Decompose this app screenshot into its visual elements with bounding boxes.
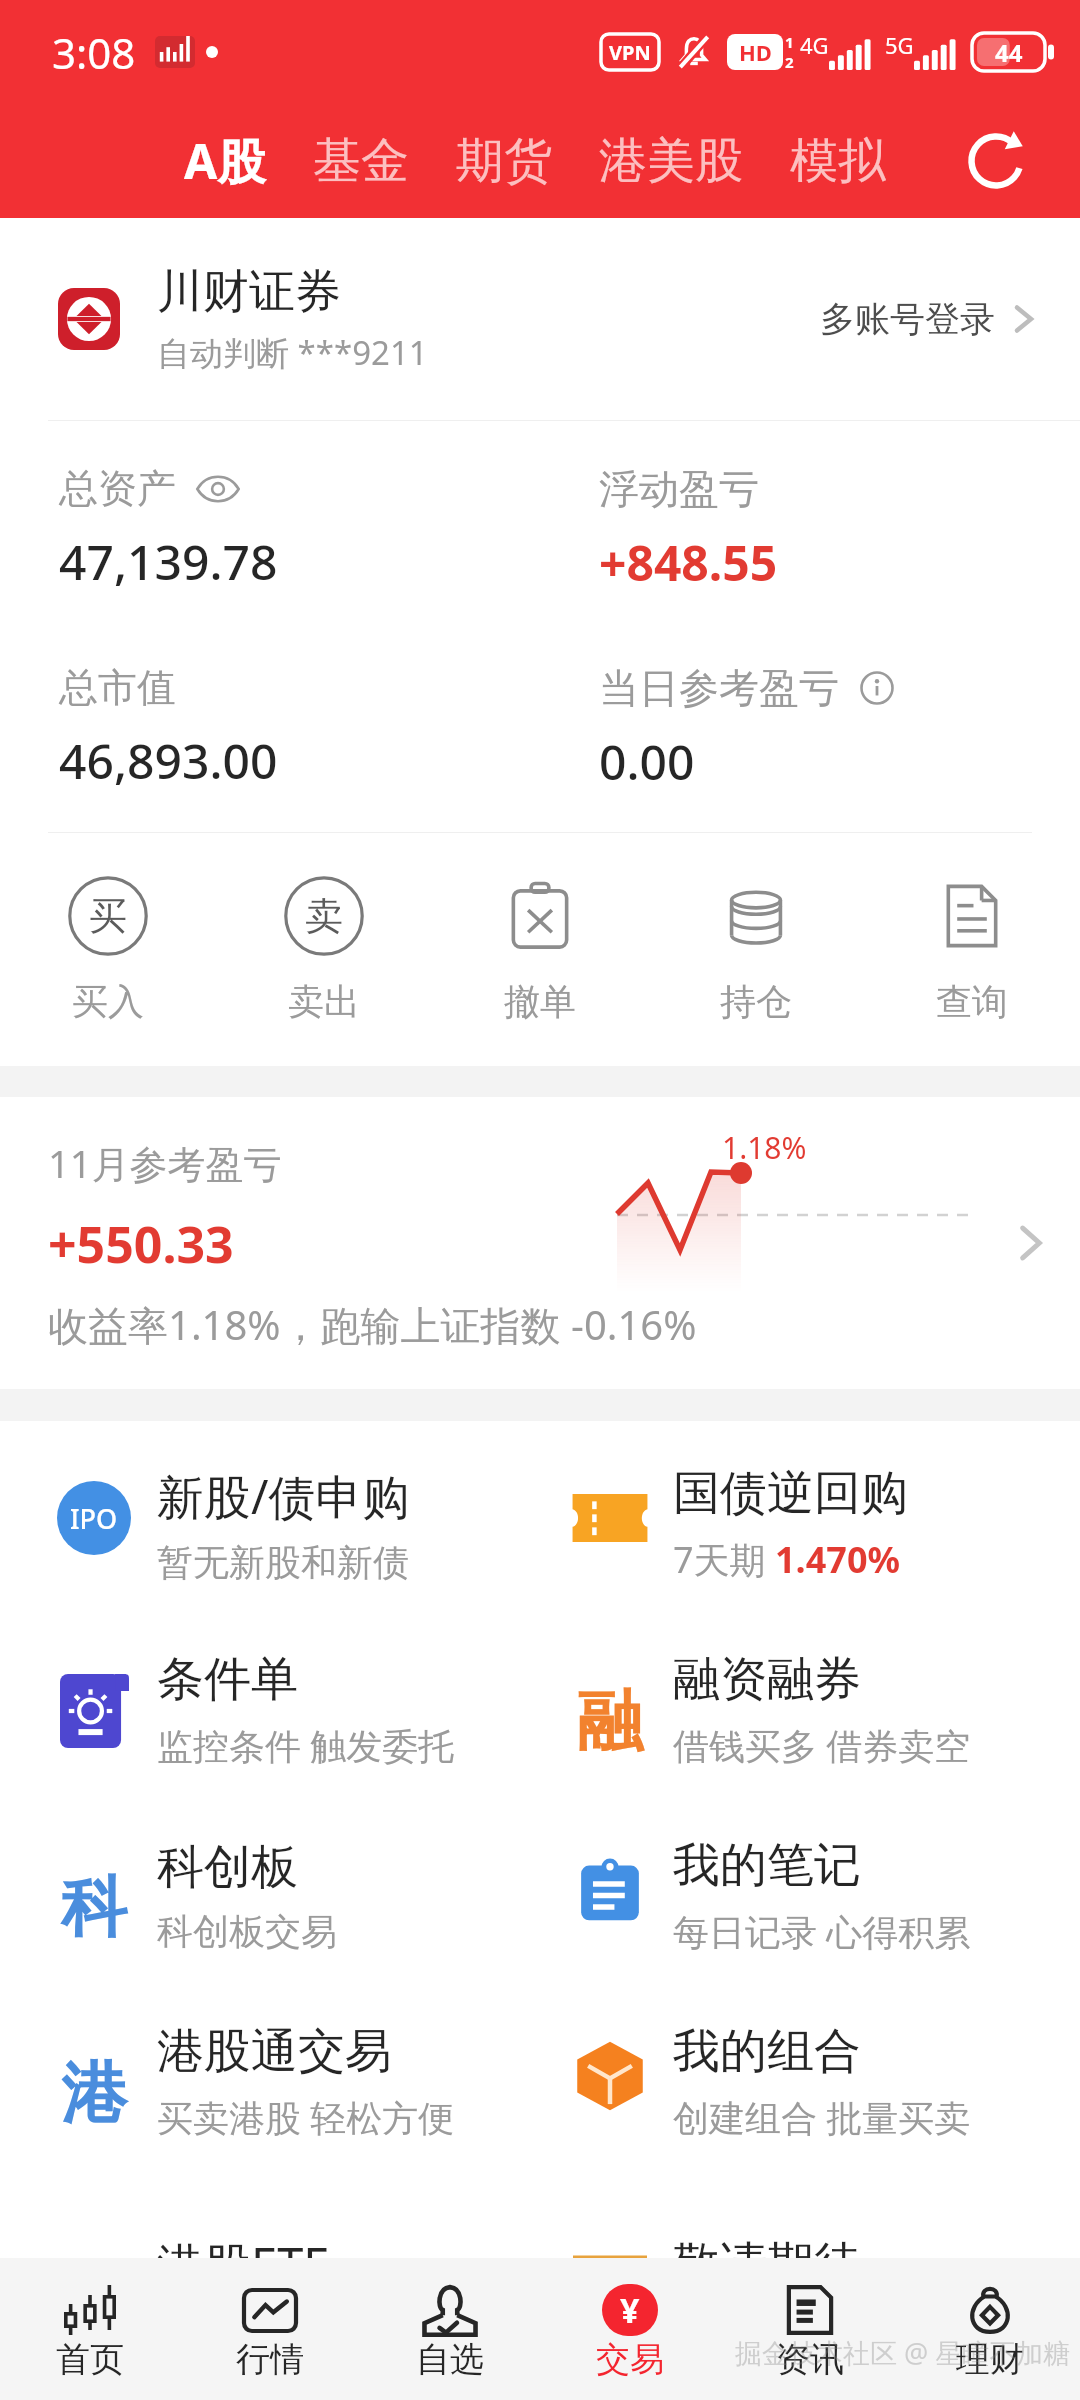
staticText: HD <box>739 37 772 67</box>
button[interactable]: 川财证券 <box>0 218 1080 420</box>
staticText: 浮动盈亏 <box>599 464 759 514</box>
button[interactable]: 资讯 <box>720 2258 900 2400</box>
staticText: 总资产 <box>59 464 176 513</box>
staticText: 撤单 <box>504 979 576 1024</box>
button[interactable]: 卖 <box>216 833 432 1066</box>
staticText: 川财证券 <box>157 263 341 321</box>
staticText: 交易 <box>596 2338 664 2381</box>
button[interactable]: 我的笔记 <box>540 1793 1080 1979</box>
staticText: 理财 <box>956 2338 1024 2381</box>
staticText: 卖 <box>305 892 343 940</box>
button[interactable]: 11月参考盈亏 <box>0 1097 1080 1389</box>
staticText: 买 <box>89 892 127 940</box>
staticText: 科 <box>61 1866 127 1949</box>
staticText: A股 <box>184 128 266 194</box>
staticText: 44 <box>995 36 1023 69</box>
button[interactable]: 国债逆回购 <box>540 1421 1080 1607</box>
button[interactable]: 查询 <box>864 833 1080 1066</box>
staticText: 总市值 <box>59 663 176 712</box>
staticText: 收益率1.18%，跑输上证指数 -0.16% <box>48 1297 697 1352</box>
staticText: 借钱买多 借券卖空 <box>673 1721 971 1770</box>
staticText: 条件单 <box>157 1650 298 1709</box>
staticText: 3:08 <box>52 24 136 81</box>
button[interactable]: 港 <box>0 1979 540 2165</box>
staticText: 港股ETF <box>157 2232 328 2296</box>
button[interactable]: ¥ <box>540 2258 720 2400</box>
staticText: 4G <box>800 30 829 60</box>
staticText: ¥ <box>620 2287 640 2333</box>
staticText: VPN <box>609 39 651 66</box>
staticText: 0.00 <box>599 729 695 794</box>
staticText: 国债逆回购 <box>673 1464 908 1523</box>
button[interactable]: 理财 <box>900 2258 1080 2400</box>
button[interactable]: 融 <box>540 1607 1080 1793</box>
staticText: 监控条件 触发委托 <box>157 1721 455 1770</box>
staticText: 自动判断 ***9211 <box>157 330 428 375</box>
button[interactable]: 首页 <box>0 2258 180 2400</box>
button[interactable]: 模拟 <box>790 104 886 218</box>
button[interactable]: 基金 <box>313 104 409 218</box>
staticText: 1 <box>785 32 794 52</box>
button[interactable]: 买 <box>0 833 216 1066</box>
staticText: 暂无新股和新债 <box>157 1540 409 1585</box>
button[interactable]: 港股ETF <box>0 2165 540 2343</box>
staticText: IPO <box>70 1500 118 1537</box>
staticText: 科创板 <box>157 1838 298 1897</box>
button[interactable]: 科 <box>0 1793 540 1979</box>
staticText: 基金 <box>313 131 409 191</box>
staticText: 卖出 <box>288 979 360 1024</box>
staticText: 买卖港股 轻松方便 <box>157 2093 455 2142</box>
button[interactable]: 期货 <box>456 104 552 218</box>
staticText: 行情 <box>236 2338 304 2381</box>
staticText: 我的组合 <box>673 2022 861 2081</box>
button[interactable]: 我的组合 <box>540 1979 1080 2165</box>
staticText: 1.470% <box>775 1535 900 1584</box>
staticText: 港 <box>61 2052 127 2135</box>
staticText: 47,139.78 <box>59 529 278 594</box>
staticText: 7天期 <box>673 1535 775 1584</box>
button[interactable]: 行情 <box>180 2258 360 2400</box>
staticText: 我的笔记 <box>673 1836 861 1895</box>
button[interactable]: 自选 <box>360 2258 540 2400</box>
staticText: 融 <box>577 1680 643 1763</box>
staticText: 首页 <box>56 2338 124 2381</box>
button[interactable]: 条件单 <box>0 1607 540 1793</box>
staticText: 融资融券 <box>673 1650 861 1709</box>
staticText: 当日参考盈亏 <box>599 663 839 713</box>
staticText: 每日记录 心得积累 <box>673 1907 971 1956</box>
staticText: 期货 <box>456 131 552 191</box>
staticText: 模拟 <box>790 131 886 191</box>
button[interactable]: 持仓 <box>648 833 864 1066</box>
button[interactable]: 港美股 <box>599 104 743 218</box>
staticText: 掘金技术社区 @ 星瞳不加糖 <box>735 2334 1080 2371</box>
button[interactable]: A股 <box>184 104 266 218</box>
staticText: 创建组合 批量买卖 <box>673 2093 971 2142</box>
staticText: 2 <box>785 52 794 72</box>
staticText: 查询 <box>936 979 1008 1024</box>
staticText: 敬请期待 <box>673 2235 861 2294</box>
staticText: 多账号登录 <box>820 297 995 341</box>
button[interactable]: IPO <box>0 1421 540 1607</box>
button[interactable]: Refresh <box>950 115 1042 207</box>
button[interactable]: 敬请期待 <box>540 2165 1080 2343</box>
staticText: 资讯 <box>776 2338 844 2381</box>
staticText: 买入 <box>72 979 144 1024</box>
staticText: 1.18% <box>722 1127 807 1168</box>
staticText: +848.55 <box>599 530 778 595</box>
staticText: 持仓 <box>720 979 792 1024</box>
staticText: 港美股 <box>599 131 743 191</box>
staticText: 新股/债申购 <box>157 1464 410 1528</box>
button[interactable]: 撤单 <box>432 833 648 1066</box>
staticText: 科创板交易 <box>157 1909 337 1954</box>
staticText: 自选 <box>416 2338 484 2381</box>
staticText: +550.33 <box>48 1210 234 1278</box>
staticText: 港股通交易 <box>157 2022 392 2081</box>
staticText: 5G <box>885 30 914 60</box>
staticText: 11月参考盈亏 <box>48 1137 282 1189</box>
staticText: 46,893.00 <box>59 728 278 793</box>
